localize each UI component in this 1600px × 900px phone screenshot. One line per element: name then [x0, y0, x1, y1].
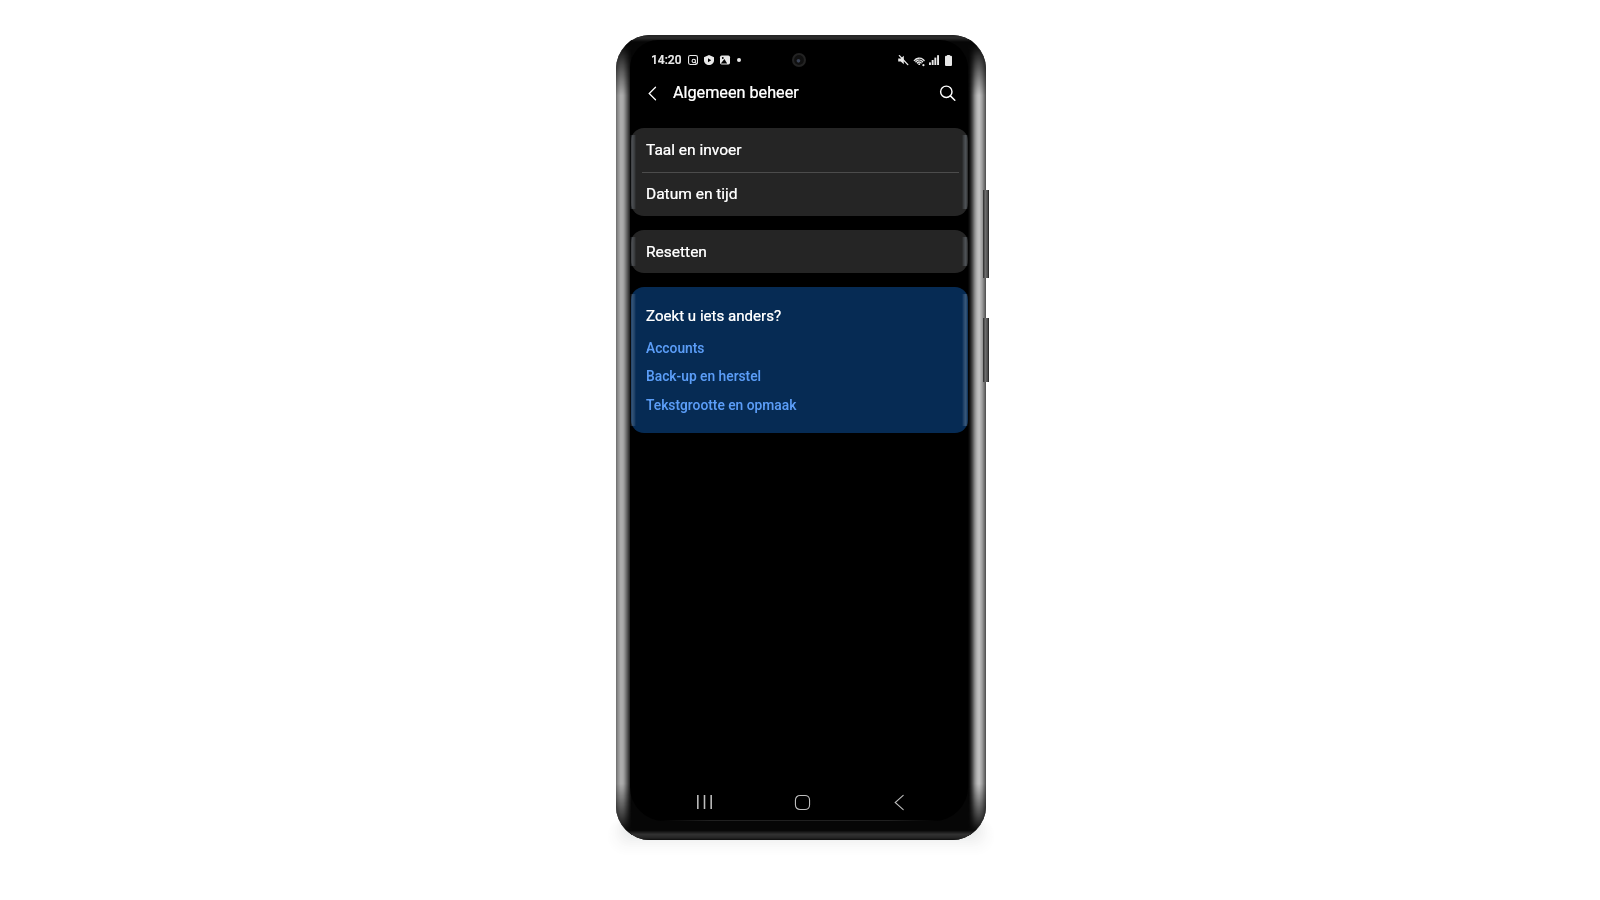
- button[interactable]: Taal en invoer: [631, 128, 968, 172]
- staticText: Algemeen beheer: [673, 83, 799, 102]
- staticText: Resetten: [646, 243, 707, 261]
- button[interactable]: Back: [875, 778, 923, 821]
- button[interactable]: Back-up en herstel: [646, 367, 762, 385]
- button[interactable]: Back: [635, 76, 669, 110]
- staticText: Zoekt u iets anders?: [646, 307, 782, 325]
- button[interactable]: Home: [778, 778, 826, 821]
- button[interactable]: Datum en tijd: [631, 172, 968, 216]
- button[interactable]: Resetten: [631, 230, 968, 273]
- staticText: 14:20: [651, 53, 682, 67]
- staticText: Datum en tijd: [646, 185, 738, 203]
- button[interactable]: Search: [929, 75, 965, 111]
- button[interactable]: Tekstgrootte en opmaak: [646, 396, 797, 414]
- button[interactable]: Recent apps: [680, 778, 728, 821]
- staticText: Taal en invoer: [646, 141, 742, 159]
- staticText: Accounts: [646, 340, 705, 356]
- button[interactable]: Accounts: [646, 339, 705, 357]
- staticText: Back-up en herstel: [646, 368, 762, 384]
- staticText: Tekstgrootte en opmaak: [646, 397, 797, 413]
